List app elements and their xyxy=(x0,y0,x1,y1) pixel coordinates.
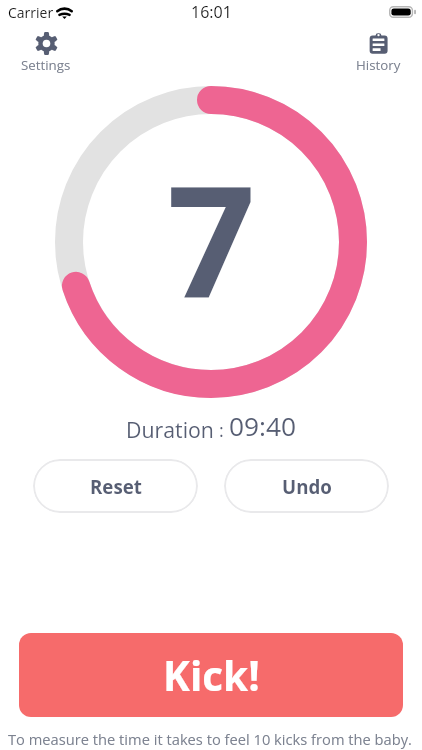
button[interactable]: Settings xyxy=(21,32,71,74)
staticText: History xyxy=(356,56,401,74)
staticText: Settings xyxy=(21,56,71,74)
button[interactable]: Reset xyxy=(33,459,198,513)
staticText: Undo xyxy=(282,474,332,499)
staticText: Kick! xyxy=(163,648,260,703)
staticText: : xyxy=(219,418,224,443)
staticText: 16:01 xyxy=(191,1,232,23)
button[interactable]: History xyxy=(356,32,401,74)
staticText: To measure the time it takes to feel 10 … xyxy=(8,729,422,749)
staticText: 09:40 xyxy=(229,408,297,444)
staticText: 7 xyxy=(167,132,256,343)
button[interactable]: Kick! xyxy=(19,633,403,717)
staticText: Reset xyxy=(90,474,142,499)
other: History xyxy=(367,32,390,55)
staticText: Carrier xyxy=(8,3,54,22)
staticText: Duration xyxy=(126,415,214,444)
other: Settings xyxy=(35,32,58,55)
button[interactable]: Undo xyxy=(224,459,389,513)
